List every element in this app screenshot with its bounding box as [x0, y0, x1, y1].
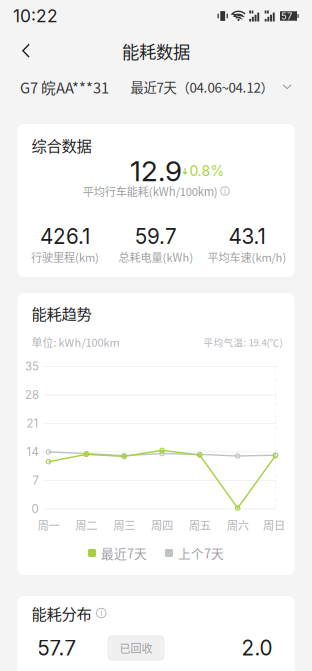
staticText: 已回收	[119, 640, 152, 656]
staticText: 周三	[113, 517, 135, 533]
staticText: 10:22	[13, 5, 58, 26]
staticText: 平均车速(km/h)	[207, 249, 286, 265]
staticText: 平均气温: 19.4(℃)	[203, 335, 282, 349]
staticText: G7 皖AA***31	[20, 76, 109, 98]
staticText: 57.7	[37, 635, 76, 660]
staticText: 2.0	[241, 635, 272, 660]
staticText: 0.8%	[189, 162, 224, 179]
staticText: i	[100, 608, 102, 618]
staticText: 单位: kWh/100km	[31, 334, 119, 350]
staticText: 周四	[151, 517, 173, 533]
staticText: 43.1	[228, 224, 265, 249]
button[interactable]: Back	[8, 33, 44, 69]
staticText: 59.7	[135, 224, 177, 249]
staticText: 上个7天	[178, 544, 224, 562]
staticText: 周二	[75, 517, 97, 533]
staticText: 426.1	[40, 224, 90, 249]
staticText: 28	[25, 388, 39, 402]
staticText: 行驶里程(km)	[31, 249, 99, 265]
staticText: 周一	[37, 517, 59, 533]
button[interactable]: 最近7天（04.06~04.12）	[130, 70, 292, 104]
staticText: 能耗数据	[122, 38, 190, 64]
staticText: 综合数据	[31, 134, 91, 156]
staticText: 平均行车能耗(kWh/100km)	[83, 183, 218, 199]
staticText: 12.9	[130, 154, 182, 188]
staticText: 7	[32, 474, 38, 487]
staticText: 14	[26, 445, 38, 459]
staticText: 35	[25, 360, 39, 373]
staticText: 最近7天（04.06~04.12）	[130, 77, 273, 97]
staticText: 能耗趋势	[31, 302, 91, 324]
staticText: 周六	[227, 517, 249, 533]
staticText: i	[224, 186, 226, 196]
staticText: 21	[26, 417, 38, 430]
staticText: 57	[281, 10, 292, 22]
staticText: 0	[31, 502, 38, 516]
staticText: 最近7天	[101, 544, 147, 562]
button[interactable]: G7 皖AA***31	[20, 70, 109, 104]
staticText: 总耗电量(kWh)	[118, 249, 193, 265]
staticText: 周日	[263, 517, 285, 533]
staticText: 能耗分布	[31, 602, 91, 624]
staticText: 周五	[189, 517, 211, 533]
